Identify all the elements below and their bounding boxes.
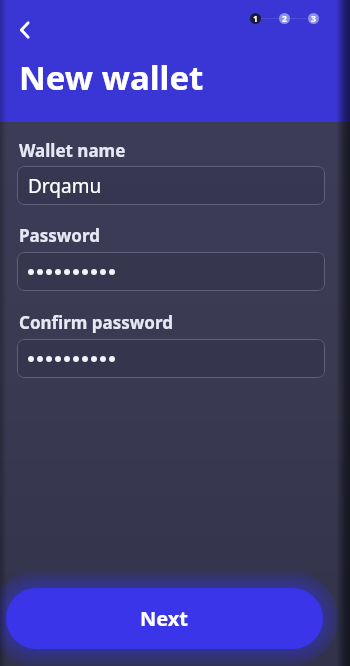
staticText: Drqamu xyxy=(28,173,102,199)
button[interactable]: Back xyxy=(7,12,43,48)
button[interactable]: Drqamu xyxy=(17,166,325,205)
button[interactable] xyxy=(17,252,325,291)
staticText: Wallet name xyxy=(19,139,126,162)
staticText: 1 xyxy=(253,13,258,24)
button[interactable] xyxy=(17,339,325,378)
staticText: 3 xyxy=(311,13,316,24)
staticText: 2 xyxy=(282,13,287,24)
button[interactable]: Next xyxy=(6,588,323,649)
staticText: New wallet xyxy=(19,55,204,100)
staticText: Next xyxy=(140,605,189,632)
staticText: Confirm password xyxy=(19,311,174,334)
staticText: Password xyxy=(19,224,100,247)
